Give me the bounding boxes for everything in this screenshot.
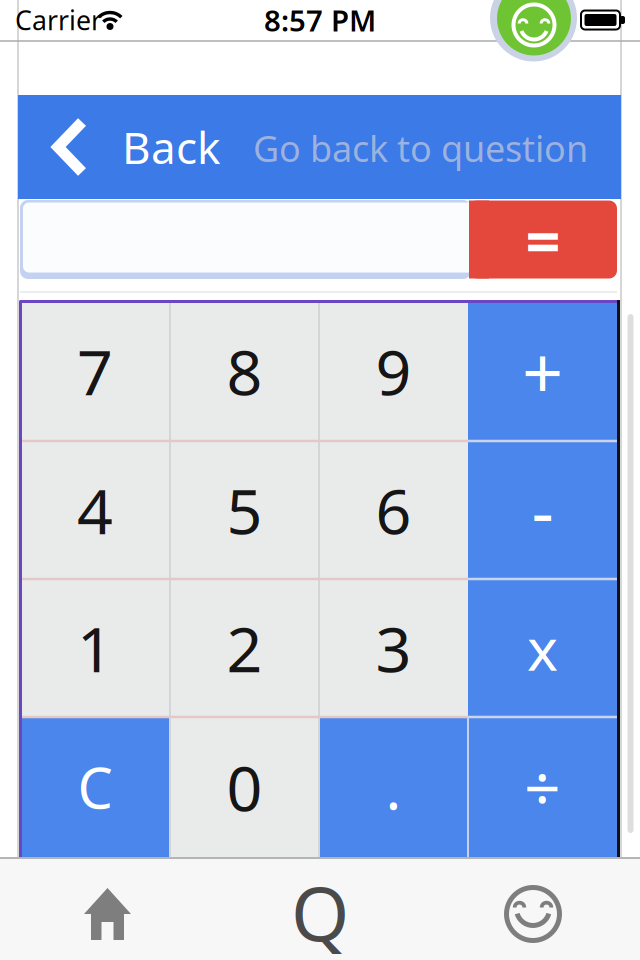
staticText: . [385,748,401,826]
button[interactable]: 9 [319,301,468,441]
button[interactable] [84,888,131,940]
staticText: + [522,323,563,419]
staticText: C [77,750,112,824]
staticText: 8:57 PM [264,0,376,39]
staticText: = [525,199,560,280]
button[interactable]: . [319,717,468,857]
staticText: 0 [226,745,262,829]
button[interactable]: Back [37,97,237,197]
button[interactable]: 4 [20,441,170,579]
staticText: 6 [375,468,411,552]
button[interactable] [503,884,563,944]
staticText: 4 [77,468,113,552]
button[interactable]: Q [250,862,390,960]
button[interactable] [23,202,475,272]
staticText: Go back to question [253,124,588,172]
button[interactable]: = [469,200,617,278]
button[interactable] [490,0,577,61]
staticText: 1 [77,606,113,690]
staticText: x [527,609,558,687]
button[interactable]: C [20,717,170,857]
staticText: ÷ [524,744,561,829]
staticText: - [531,464,553,556]
button[interactable]: 1 [20,579,170,717]
staticText: 8 [226,329,262,413]
button[interactable]: 0 [170,717,319,857]
staticText: 2 [226,606,262,690]
staticText: 3 [375,606,411,690]
staticText: Q [291,862,349,960]
button[interactable]: + [468,301,617,441]
button[interactable]: 2 [170,579,319,717]
button[interactable]: ÷ [468,717,617,857]
staticText: 9 [375,329,411,413]
staticText: Carrier [15,2,102,38]
staticText: 7 [77,329,113,413]
staticText: 5 [226,468,262,552]
button[interactable]: 3 [319,579,468,717]
button[interactable]: 6 [319,441,468,579]
button[interactable]: 5 [170,441,319,579]
staticText: Back [122,118,220,176]
button[interactable]: - [468,441,617,579]
button[interactable]: 8 [170,301,319,441]
button[interactable]: x [468,579,617,717]
button[interactable]: 7 [20,301,170,441]
